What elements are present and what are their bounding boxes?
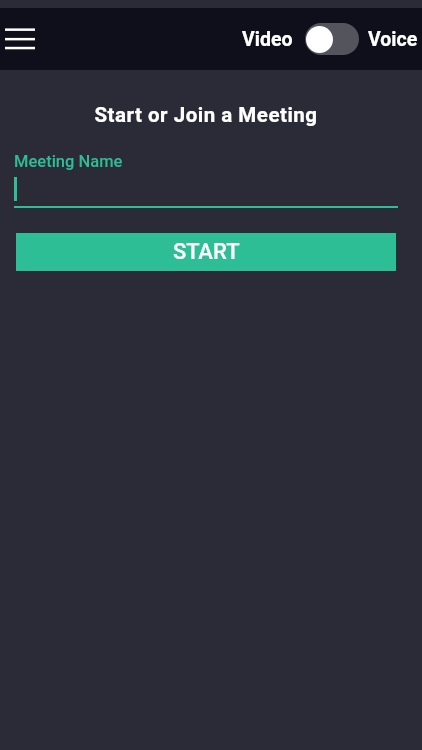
button[interactable]: Video (242, 28, 293, 51)
staticText: Video (242, 28, 293, 51)
button[interactable]: Toggle between video and voice call (305, 23, 359, 55)
button[interactable]: Open navigation menu (5, 24, 35, 54)
staticText: Voice (368, 28, 418, 51)
staticText: Start or Join a Meeting (94, 103, 318, 127)
button[interactable]: START (16, 233, 396, 271)
staticText: Meeting Name (14, 152, 123, 171)
staticText: START (173, 239, 240, 265)
button[interactable]: Voice (368, 28, 418, 51)
button[interactable]: Meeting Name (14, 148, 398, 208)
